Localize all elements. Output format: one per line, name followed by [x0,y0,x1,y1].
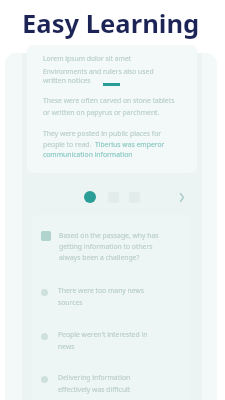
button[interactable]: communication information [43,150,133,159]
staticText: people to read. [43,140,92,149]
staticText: Lorem ipsum dolor sit amet [43,54,132,63]
staticText: Environments and rulers also used [43,67,154,76]
staticText: They were posted in public places for [43,129,162,138]
staticText: Based on the passage, why has [59,231,159,240]
button[interactable]: Next page [174,190,188,204]
button[interactable]: There were too many news [41,286,181,318]
button[interactable]: Tiberius was emperor [95,140,165,149]
button[interactable]: People weren't interested in [41,330,181,362]
staticText: or written on papyrus or parchment. [43,108,160,117]
staticText: People weren't interested in [58,330,148,339]
staticText: Delivering information [58,373,131,382]
staticText: news [58,342,75,351]
staticText: written notices [43,76,91,85]
staticText: sources [58,298,83,307]
staticText: Easy Learning [22,6,200,41]
staticText: effectively was difficult [58,385,131,394]
staticText: These were often carved on stone tablets [43,96,175,105]
button[interactable]: Delivering information [41,373,181,400]
staticText: There were too many news [58,286,145,295]
staticText: always been a challenge? [59,253,140,262]
staticText: getting information to others [59,242,153,251]
button[interactable]: Page 1 [84,191,96,203]
